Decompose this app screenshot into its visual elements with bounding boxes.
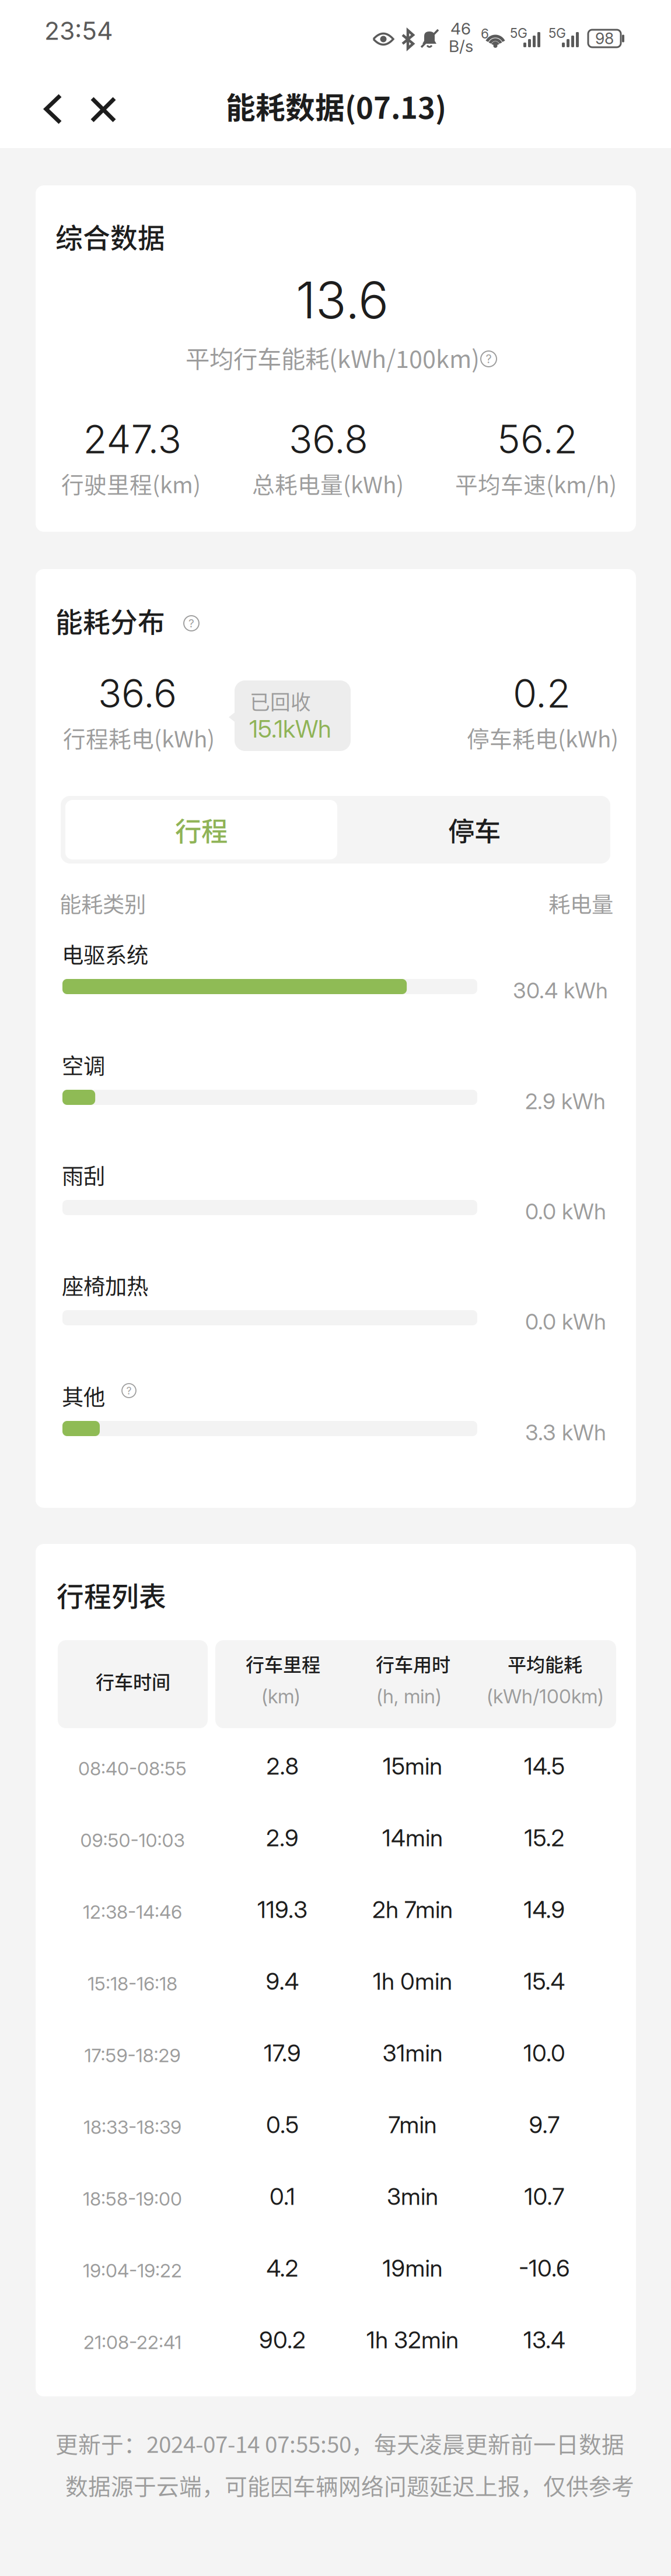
staticText: 停车	[448, 811, 501, 849]
staticText: 21:08-22:41	[83, 2331, 181, 2353]
staticText: (km)	[261, 1684, 300, 1708]
staticText: (h, min)	[376, 1684, 442, 1708]
staticText: 247.3	[83, 416, 181, 463]
staticText: 7min	[388, 2111, 437, 2139]
staticText: 09:50-10:03	[80, 1829, 185, 1851]
staticText: 0.0 kWh	[525, 1308, 606, 1335]
staticText: 90.2	[259, 2326, 306, 2354]
staticText: (kWh/100km)	[487, 1684, 604, 1708]
staticText: 0.2	[513, 670, 571, 717]
staticText: 更新于：2024-07-14 07:55:50，每天凌晨更新前一日数据	[55, 2427, 624, 2459]
staticText: ?	[188, 617, 194, 630]
staticText: 19min	[382, 2254, 443, 2282]
staticText: 数据源于云端，可能因车辆网络问题延迟上报，仅供参考	[65, 2469, 634, 2501]
staticText: 10.7	[524, 2182, 565, 2211]
staticText: 0.0 kWh	[525, 1198, 606, 1225]
staticText: B/s	[449, 36, 473, 56]
staticText: 5G	[510, 25, 527, 41]
staticText: 14.9	[524, 1895, 565, 1924]
staticText: 2.9 kWh	[525, 1088, 606, 1114]
staticText: 能耗数据(07.13)	[226, 85, 446, 127]
staticText: 98	[595, 29, 614, 48]
staticText: 综合数据	[55, 216, 165, 256]
staticText: 耗电量	[548, 887, 613, 919]
staticText: 能耗类别	[60, 887, 146, 919]
button[interactable]: Back	[28, 82, 78, 136]
staticText: 3min	[387, 2182, 438, 2211]
staticText: 1h 32min	[366, 2326, 459, 2354]
staticText: 15min	[383, 1752, 442, 1780]
staticText: 36.8	[289, 416, 368, 463]
staticText: 平均车速(km/h)	[455, 467, 617, 500]
staticText: 18:58-19:00	[83, 2187, 182, 2210]
staticText: 停车耗电(kWh)	[467, 721, 618, 754]
staticText: 雨刮	[62, 1159, 105, 1191]
staticText: -10.6	[519, 2254, 570, 2282]
staticText: 10.0	[523, 2039, 565, 2067]
staticText: 36.6	[98, 670, 177, 717]
staticText: 119.3	[257, 1895, 307, 1924]
staticText: 18:33-18:39	[83, 2116, 181, 2138]
staticText: 行程	[175, 811, 228, 849]
staticText: 平均能耗	[508, 1650, 582, 1677]
staticText: 6	[481, 26, 489, 42]
staticText: 行车用时	[376, 1650, 450, 1677]
staticText: 46	[450, 19, 471, 38]
staticText: 15.1kWh	[249, 714, 331, 743]
staticText: 0.1	[270, 2182, 295, 2211]
staticText: 行程耗电(kWh)	[63, 721, 215, 754]
staticText: 行程列表	[57, 1575, 166, 1614]
staticText: 13.6	[296, 269, 389, 331]
staticText: 15.2	[524, 1824, 565, 1852]
staticText: 行车里程	[246, 1650, 320, 1677]
staticText: 9.4	[266, 1967, 299, 1995]
staticText: 5G	[548, 25, 566, 41]
staticText: 平均行车能耗(kWh/100km)	[186, 340, 480, 375]
button[interactable]: Close	[78, 82, 128, 137]
staticText: 31min	[382, 2039, 443, 2067]
staticText: 13.4	[523, 2326, 565, 2354]
staticText: 15.4	[524, 1967, 565, 1995]
staticText: 14min	[382, 1824, 443, 1852]
staticText: 12:38-14:46	[83, 1901, 182, 1923]
staticText: 4.2	[266, 2254, 298, 2282]
staticText: 座椅加热	[62, 1269, 148, 1301]
staticText: 能耗分布	[55, 601, 165, 640]
staticText: 行车时间	[96, 1668, 170, 1695]
staticText: 电驱系统	[62, 938, 148, 970]
staticText: 行驶里程(km)	[61, 467, 201, 500]
staticText: 2h 7min	[372, 1895, 453, 1924]
staticText: ?	[486, 352, 492, 366]
staticText: 17.9	[264, 2039, 301, 2067]
staticText: 30.4 kWh	[513, 977, 608, 1004]
staticText: 其他	[62, 1380, 105, 1412]
staticText: 08:40-08:55	[78, 1757, 187, 1780]
staticText: 已回收	[250, 686, 311, 716]
button[interactable]: 停车	[338, 800, 610, 859]
staticText: 17:59-18:29	[84, 2044, 181, 2067]
staticText: 19:04-19:22	[83, 2259, 182, 2282]
staticText: 23:54	[44, 16, 113, 46]
staticText: 2.8	[266, 1752, 298, 1780]
staticText: 总耗电量(kWh)	[252, 467, 404, 500]
staticText: 9.7	[529, 2111, 560, 2139]
staticText: 56.2	[497, 416, 578, 463]
staticText: 2.9	[266, 1824, 299, 1852]
staticText: 1h 0min	[373, 1967, 452, 1995]
button[interactable]: 行程	[65, 800, 337, 859]
staticText: ?	[126, 1384, 132, 1397]
staticText: 3.3 kWh	[525, 1419, 606, 1446]
staticText: 空调	[62, 1049, 105, 1080]
staticText: 0.5	[266, 2111, 299, 2139]
staticText: 15:18-16:18	[88, 1972, 177, 1995]
staticText: 14.5	[524, 1752, 565, 1780]
